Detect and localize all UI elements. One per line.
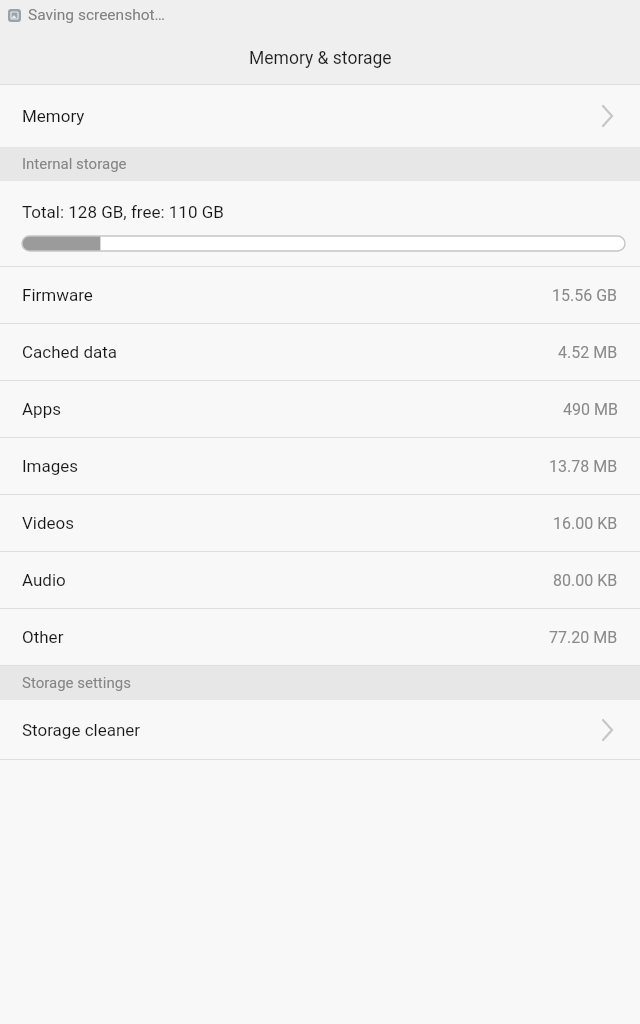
staticText: Memory & storage — [249, 48, 392, 69]
staticText: Other — [22, 627, 64, 647]
staticText: Videos — [22, 513, 75, 533]
staticText: Images — [22, 456, 79, 476]
button[interactable]: Memory — [0, 85, 640, 147]
button[interactable]: Cached data — [0, 324, 640, 381]
staticText: Apps — [22, 399, 61, 419]
staticText: 15.56 GB — [552, 286, 618, 305]
staticText: Internal storage — [22, 155, 127, 173]
button[interactable]: Storage cleaner — [0, 700, 640, 760]
staticText: Memory — [22, 106, 85, 126]
button[interactable]: Videos — [0, 495, 640, 552]
staticText: 490 MB — [563, 400, 618, 419]
staticText: Saving screenshot… — [28, 6, 165, 24]
button[interactable]: Other — [0, 609, 640, 666]
staticText: 77.20 MB — [549, 628, 618, 647]
staticText: 80.00 KB — [553, 571, 618, 590]
staticText: Firmware — [22, 285, 93, 305]
staticText: Cached data — [22, 342, 118, 362]
staticText: 16.00 KB — [553, 514, 618, 533]
button[interactable]: Images — [0, 438, 640, 495]
button[interactable]: Firmware — [0, 267, 640, 324]
staticText: Total: 128 GB, free: 110 GB — [22, 202, 224, 222]
staticText: Audio — [22, 570, 66, 590]
button[interactable]: Apps — [0, 381, 640, 438]
staticText: Storage settings — [22, 674, 131, 692]
button[interactable]: Audio — [0, 552, 640, 609]
staticText: 4.52 MB — [558, 343, 618, 362]
staticText: Storage cleaner — [22, 720, 141, 740]
staticText: 13.78 MB — [549, 457, 618, 476]
